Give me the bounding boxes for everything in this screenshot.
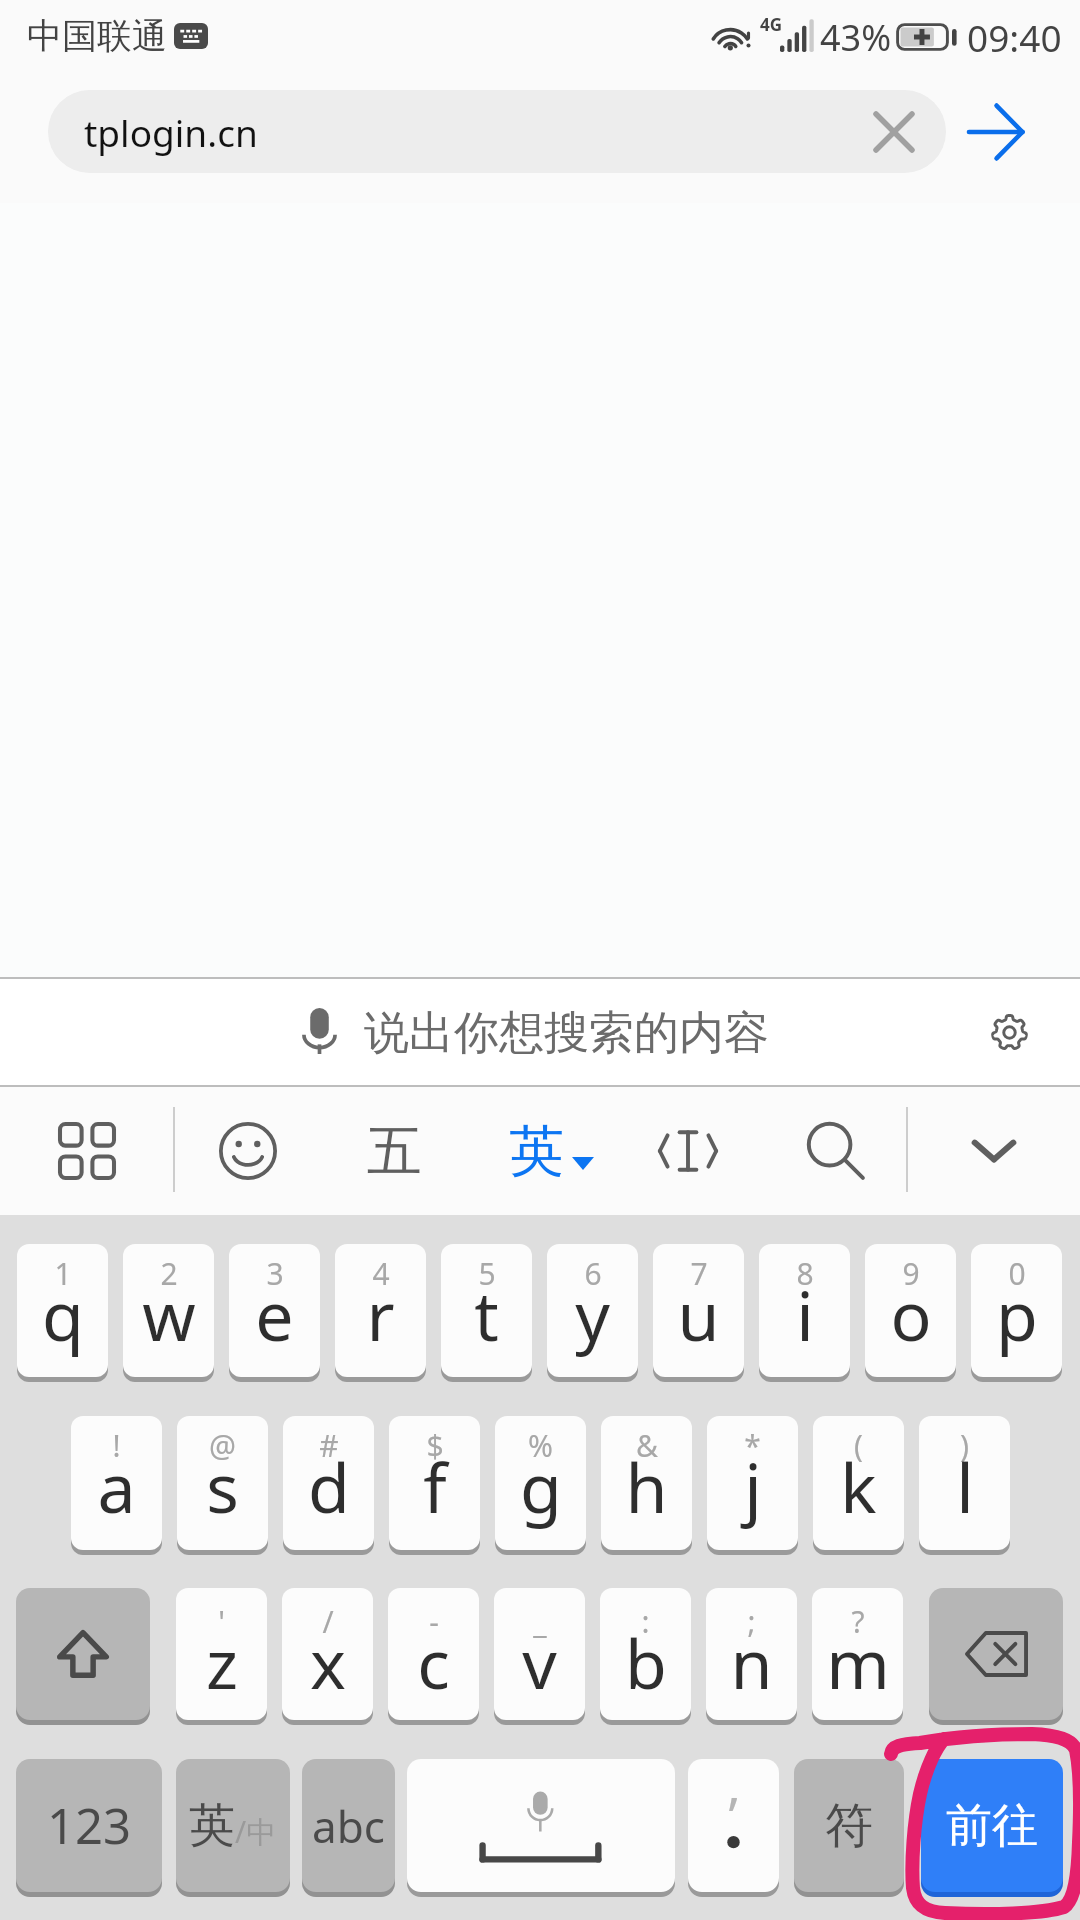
button[interactable]: Comma period: [688, 1759, 779, 1892]
button[interactable]: :: [600, 1588, 691, 1720]
button[interactable]: @: [177, 1416, 268, 1550]
staticText: b: [625, 1616, 667, 1709]
staticText: _: [533, 1601, 547, 1642]
button[interactable]: Backspace: [929, 1588, 1063, 1720]
button[interactable]: Apps: [0, 1087, 174, 1215]
button[interactable]: Switch Chinese English: [176, 1759, 290, 1892]
button[interactable]: Symbols: [794, 1759, 904, 1892]
staticText: *: [744, 1425, 761, 1466]
button[interactable]: Go: [921, 1759, 1063, 1892]
button[interactable]: Settings: [977, 1000, 1041, 1064]
staticText: ': [218, 1601, 225, 1642]
button[interactable]: ': [176, 1588, 267, 1720]
button[interactable]: 6: [547, 1244, 638, 1377]
button[interactable]: /: [282, 1588, 373, 1720]
button[interactable]: ?: [812, 1588, 903, 1720]
button[interactable]: _: [494, 1588, 585, 1720]
button[interactable]: *: [707, 1416, 798, 1550]
staticText: @: [209, 1425, 236, 1466]
button[interactable]: Hide keyboard: [908, 1087, 1080, 1215]
staticText: i: [796, 1268, 814, 1361]
staticText: e: [255, 1268, 294, 1361]
staticText: a: [97, 1440, 136, 1533]
button[interactable]: 4: [335, 1244, 426, 1377]
staticText: z: [206, 1616, 238, 1709]
staticText: 5: [478, 1253, 496, 1294]
button[interactable]: #: [283, 1416, 374, 1550]
button[interactable]: 8: [759, 1244, 850, 1377]
button[interactable]: !: [71, 1416, 162, 1550]
button[interactable]: English input: [477, 1087, 625, 1215]
staticText: (: [854, 1425, 863, 1466]
staticText: u: [677, 1268, 720, 1361]
staticText: h: [625, 1440, 668, 1533]
staticText: $: [426, 1425, 444, 1466]
staticText: m: [826, 1616, 890, 1709]
staticText: 09:40: [967, 12, 1062, 62]
staticText: 英: [509, 1117, 564, 1186]
staticText: 2: [160, 1253, 178, 1294]
staticText: #: [319, 1425, 339, 1466]
staticText: 五: [367, 1117, 422, 1186]
staticText: ;: [747, 1601, 756, 1642]
staticText: /中: [235, 1811, 277, 1852]
button[interactable]: Wubi input: [320, 1087, 468, 1215]
staticText: p: [996, 1268, 1038, 1361]
staticText: 9: [902, 1253, 920, 1294]
staticText: 3: [266, 1253, 284, 1294]
button[interactable]: 9: [865, 1244, 956, 1377]
staticText: 4: [372, 1253, 390, 1294]
button[interactable]: Space: [407, 1759, 675, 1892]
staticText: 4G: [760, 13, 783, 36]
staticText: d: [308, 1440, 350, 1533]
staticText: /: [322, 1601, 334, 1642]
button[interactable]: tplogin.cn: [48, 90, 946, 173]
staticText: c: [417, 1616, 450, 1709]
staticText: q: [42, 1268, 84, 1361]
staticText: -: [429, 1601, 439, 1642]
button[interactable]: ;: [706, 1588, 797, 1720]
button[interactable]: Cursor keys: [615, 1087, 760, 1215]
staticText: o: [890, 1268, 932, 1361]
button[interactable]: 5: [441, 1244, 532, 1377]
staticText: 0: [1008, 1253, 1026, 1294]
staticText: %: [528, 1425, 553, 1466]
button[interactable]: Clear: [859, 97, 929, 167]
button[interactable]: &: [601, 1416, 692, 1550]
staticText: y: [575, 1268, 610, 1361]
staticText: ?: [851, 1601, 865, 1642]
staticText: j: [744, 1440, 762, 1533]
staticText: l: [956, 1440, 974, 1533]
staticText: 7: [690, 1253, 708, 1294]
staticText: 说出你想搜索的内容: [364, 1005, 769, 1062]
button[interactable]: Search: [763, 1087, 908, 1215]
staticText: 符: [825, 1796, 873, 1856]
button[interactable]: abc: [302, 1759, 395, 1892]
staticText: 英: [189, 1797, 235, 1855]
button[interactable]: %: [495, 1416, 586, 1550]
button[interactable]: -: [388, 1588, 479, 1720]
button[interactable]: $: [389, 1416, 480, 1550]
button[interactable]: 0: [971, 1244, 1062, 1377]
button[interactable]: 3: [229, 1244, 320, 1377]
staticText: ,: [727, 1759, 741, 1819]
staticText: k: [840, 1440, 877, 1533]
staticText: s: [206, 1440, 239, 1533]
button[interactable]: [0, 979, 1080, 1085]
staticText: abc: [312, 1796, 385, 1856]
staticText: &: [636, 1425, 658, 1466]
button[interactable]: (: [813, 1416, 904, 1550]
button[interactable]: 1: [17, 1244, 108, 1377]
button[interactable]: Emoji: [176, 1087, 320, 1215]
staticText: g: [520, 1440, 562, 1533]
button[interactable]: 123 keys: [16, 1759, 162, 1892]
button[interactable]: Go: [958, 94, 1034, 170]
staticText: 123: [47, 1792, 132, 1859]
button[interactable]: ): [919, 1416, 1010, 1550]
button[interactable]: 7: [653, 1244, 744, 1377]
button[interactable]: Shift: [16, 1588, 150, 1720]
button[interactable]: 2: [123, 1244, 214, 1377]
staticText: !: [112, 1425, 121, 1466]
staticText: tplogin.cn: [84, 107, 258, 157]
staticText: t: [474, 1268, 499, 1361]
